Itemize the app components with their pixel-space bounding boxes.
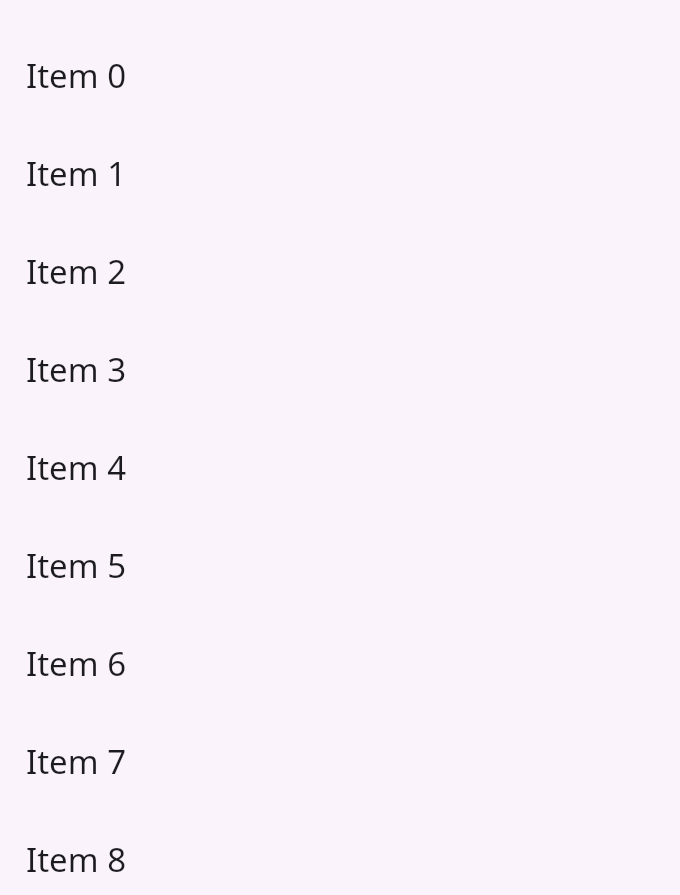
button[interactable]: Item 4	[0, 418, 680, 516]
staticText: Item 3	[26, 347, 127, 392]
staticText: Item 7	[26, 739, 127, 784]
staticText: Item 5	[26, 543, 127, 588]
staticText: Item 4	[26, 445, 127, 490]
button[interactable]: Item 2	[0, 222, 680, 320]
button[interactable]: Item 7	[0, 712, 680, 810]
button[interactable]: Item 6	[0, 614, 680, 712]
staticText: Item 1	[26, 151, 127, 196]
staticText: Item 8	[26, 837, 127, 882]
button[interactable]: Item 1	[0, 124, 680, 222]
button[interactable]: Item 5	[0, 516, 680, 614]
button[interactable]: Item 8	[0, 810, 680, 895]
staticText: Item 2	[26, 249, 127, 294]
button[interactable]: Item 0	[0, 26, 680, 124]
button[interactable]: Item 3	[0, 320, 680, 418]
staticText: Item 6	[26, 641, 127, 686]
staticText: Item 0	[26, 53, 127, 98]
